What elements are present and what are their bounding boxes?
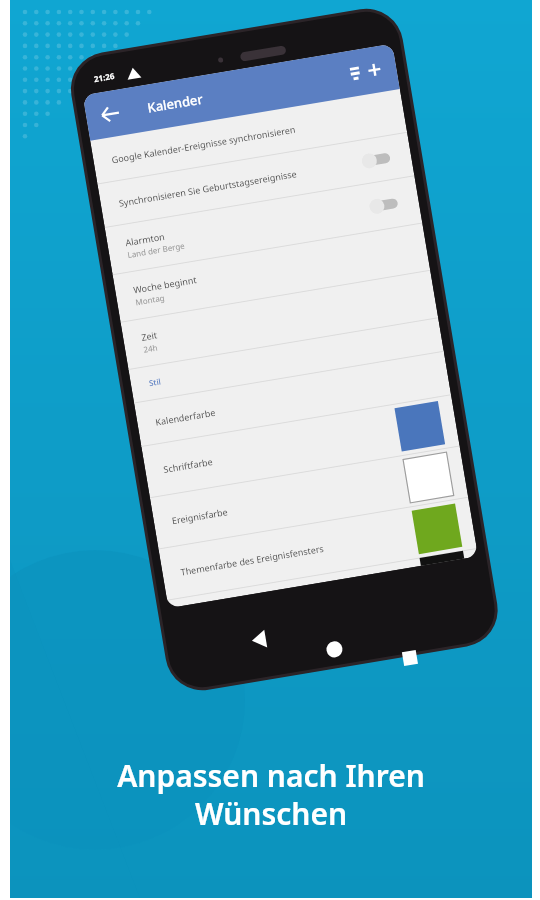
- button[interactable]: Anpassen nach Ihren Wünschen: [0, 0, 540, 900]
